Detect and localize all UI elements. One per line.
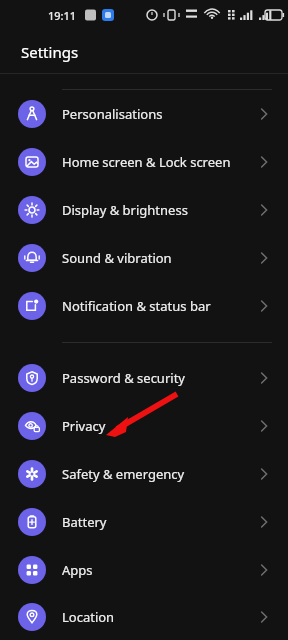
- staticText: Location: [62, 608, 256, 626]
- button[interactable]: Safety & emergency: [0, 450, 288, 498]
- button[interactable]: Apps: [0, 546, 288, 594]
- staticText: Notification & status bar: [62, 297, 256, 315]
- button[interactable]: Display & brightness: [0, 186, 288, 234]
- staticText: Home screen & Lock screen: [62, 153, 256, 171]
- button[interactable]: Privacy: [0, 402, 288, 450]
- button[interactable]: Personalisations: [0, 90, 288, 138]
- button[interactable]: Location: [0, 594, 288, 640]
- staticText: Battery: [62, 513, 256, 531]
- staticText: Display & brightness: [62, 201, 256, 219]
- staticText: Personalisations: [62, 105, 256, 123]
- staticText: Apps: [62, 561, 256, 579]
- button[interactable]: Notification & status bar: [0, 282, 288, 330]
- button[interactable]: Sound & vibration: [0, 234, 288, 282]
- staticText: Password & security: [62, 369, 256, 387]
- staticText: Privacy: [62, 417, 256, 435]
- button[interactable]: Home screen & Lock screen: [0, 138, 288, 186]
- staticText: Sound & vibration: [62, 249, 256, 267]
- button[interactable]: Battery: [0, 498, 288, 546]
- staticText: Settings: [21, 42, 79, 62]
- button[interactable]: Password & security: [0, 354, 288, 402]
- staticText: 19:11: [48, 8, 77, 23]
- staticText: Safety & emergency: [62, 465, 256, 483]
